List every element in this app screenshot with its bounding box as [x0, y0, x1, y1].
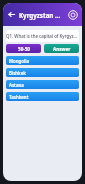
staticText: Astana: [9, 82, 24, 88]
button[interactable]: Back: [6, 9, 17, 20]
button[interactable]: Astana: [6, 80, 79, 89]
staticText: Tashkent: [9, 94, 29, 100]
staticText: Bishkek: [9, 70, 26, 76]
button[interactable]: 50-50: [6, 44, 41, 53]
staticText: 50-50: [18, 46, 30, 52]
button[interactable]: Quiz info: [66, 8, 79, 21]
button[interactable]: Mongolia: [6, 56, 79, 65]
button[interactable]: Tashkent: [6, 92, 79, 101]
button[interactable]: Bishkek: [6, 68, 79, 77]
staticText: Q1. What is the capital of Kyrgyzstan ?: [6, 33, 79, 39]
button[interactable]: Q1. What is the capital of Kyrgyzstan ?: [6, 30, 79, 42]
staticText: Answer: [53, 46, 71, 52]
button[interactable]: Answer: [44, 44, 79, 53]
staticText: Kyrgyzstan Capital...: [19, 11, 64, 19]
staticText: Mongolia: [9, 58, 30, 64]
